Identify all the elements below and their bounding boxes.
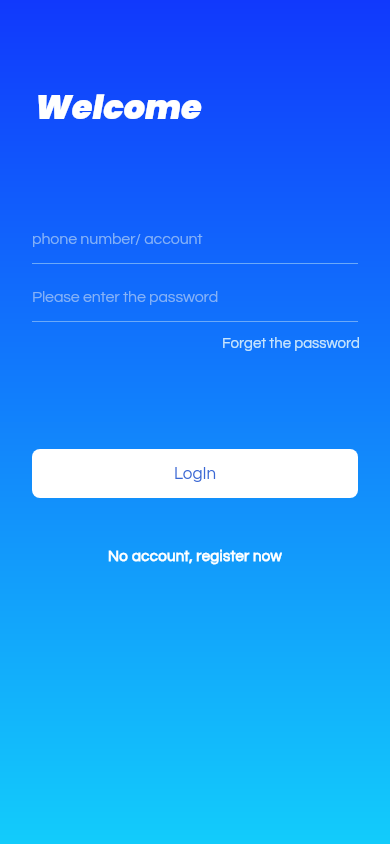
- button[interactable]: No account, register now: [108, 549, 282, 564]
- staticText: Forget the password: [222, 336, 360, 351]
- staticText: No account, register now: [108, 549, 282, 564]
- staticText: LogIn: [174, 465, 217, 483]
- button[interactable]: Please enter the password: [32, 281, 358, 313]
- button[interactable]: Forget the password: [32, 332, 360, 354]
- staticText: Please enter the password: [32, 289, 219, 305]
- button[interactable]: LogIn: [32, 449, 358, 498]
- staticText: phone number/ account: [32, 231, 203, 247]
- button[interactable]: phone number/ account: [32, 223, 358, 255]
- staticText: Welcome: [35, 84, 202, 131]
